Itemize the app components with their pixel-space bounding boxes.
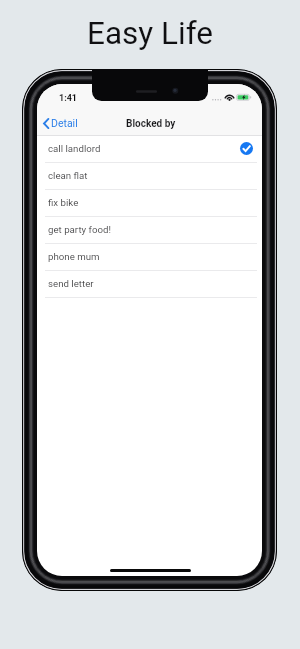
button[interactable]: clean flat	[37, 163, 262, 190]
button[interactable]: get party food!	[37, 217, 262, 244]
staticText: fix bike	[48, 197, 79, 208]
staticText: clean flat	[48, 170, 88, 181]
staticText: 1:41	[59, 93, 78, 104]
staticText: get party food!	[48, 224, 111, 235]
staticText: Blocked by	[126, 118, 176, 130]
button[interactable]: fix bike	[37, 190, 262, 217]
staticText: phone mum	[48, 251, 100, 262]
other: Completed	[240, 142, 253, 155]
button[interactable]: call landlord	[37, 136, 262, 163]
button[interactable]: send letter	[37, 271, 262, 298]
button[interactable]: Detail	[37, 114, 86, 132]
staticText: send letter	[48, 278, 94, 289]
button[interactable]: phone mum	[37, 244, 262, 271]
staticText: call landlord	[48, 143, 101, 154]
staticText: Easy Life	[87, 15, 213, 52]
staticText: Detail	[51, 117, 78, 129]
